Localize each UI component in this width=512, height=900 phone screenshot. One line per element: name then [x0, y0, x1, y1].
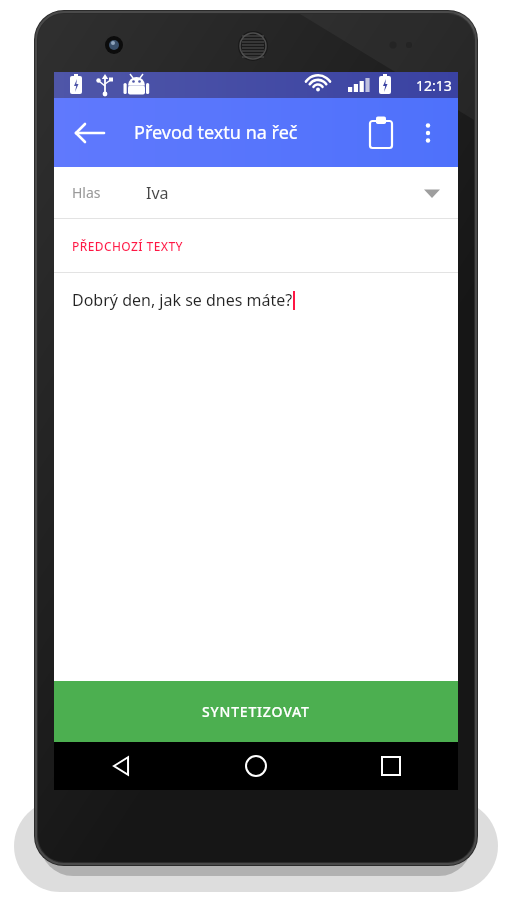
staticText: Hlas	[72, 183, 101, 202]
button[interactable]: SYNTETIZOVAT	[54, 681, 458, 742]
button[interactable]: Dobrý den, jak se dnes máte?	[54, 273, 458, 681]
staticText: Převod textu na řeč	[134, 120, 298, 145]
staticText: PŘEDCHOZÍ TEXTY	[72, 238, 184, 254]
button[interactable]: PŘEDCHOZÍ TEXTY	[54, 219, 458, 272]
button[interactable]: Recent apps	[323, 742, 458, 790]
button[interactable]: Home	[188, 742, 323, 790]
button[interactable]: More options	[408, 113, 448, 153]
staticText: 12:13	[416, 76, 452, 95]
staticText: SYNTETIZOVAT	[202, 702, 310, 721]
staticText: Iva	[146, 182, 169, 204]
staticText: Dobrý den, jak se dnes máte?	[72, 289, 293, 311]
button[interactable]: Hlas	[54, 167, 458, 218]
button[interactable]: Back	[68, 111, 112, 155]
button[interactable]: Back	[54, 742, 188, 790]
button[interactable]: Paste from clipboard	[360, 112, 402, 154]
